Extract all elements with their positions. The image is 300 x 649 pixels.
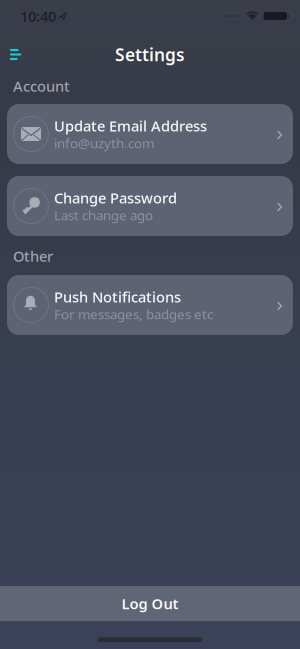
staticText: For messages, badges etc: [54, 305, 213, 323]
staticText: 10:40: [20, 6, 56, 26]
button[interactable]: Update Email Address: [7, 104, 293, 164]
staticText: Account: [13, 76, 70, 96]
staticText: Update Email Address: [54, 116, 207, 136]
button[interactable]: Menu: [0, 45, 21, 64]
staticText: info@uzyth.com: [54, 134, 154, 152]
button[interactable]: Push Notifications: [7, 275, 293, 335]
button[interactable]: Log Out: [0, 586, 300, 621]
button[interactable]: Change Password: [7, 176, 293, 236]
staticText: Other: [13, 246, 53, 266]
staticText: Push Notifications: [54, 287, 181, 307]
staticText: Settings: [115, 43, 185, 66]
staticText: Change Password: [54, 188, 177, 208]
staticText: Last change ago: [54, 206, 153, 224]
staticText: Log Out: [121, 594, 178, 613]
